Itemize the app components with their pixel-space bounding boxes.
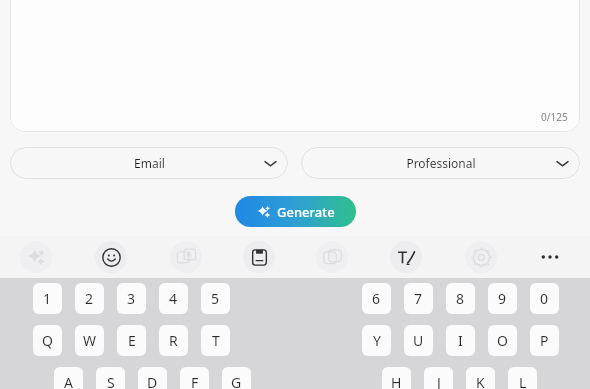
- button[interactable]: O: [488, 325, 517, 356]
- button[interactable]: L: [508, 367, 537, 389]
- button[interactable]: 1: [33, 283, 62, 314]
- staticText: Email: [134, 155, 165, 171]
- staticText: 7: [414, 289, 423, 308]
- staticText: J: [437, 373, 441, 389]
- button[interactable]: W: [75, 325, 104, 356]
- button[interactable]: 4: [159, 283, 188, 314]
- button[interactable]: J: [424, 367, 453, 389]
- staticText: 3: [127, 289, 136, 308]
- staticText: T: [212, 331, 220, 350]
- staticText: Y: [373, 331, 381, 350]
- staticText: 0: [540, 289, 549, 308]
- staticText: 1: [43, 289, 52, 308]
- button[interactable]: More options: [540, 247, 560, 267]
- button[interactable]: Clipboard: [243, 241, 275, 273]
- button[interactable]: 6: [362, 283, 391, 314]
- button[interactable]: I: [446, 325, 475, 356]
- button[interactable]: Generate: [235, 196, 356, 227]
- button[interactable]: 3: [117, 283, 146, 314]
- staticText: 8: [456, 289, 465, 308]
- staticText: Professional: [406, 155, 476, 171]
- staticText: U: [413, 331, 424, 350]
- button[interactable]: 0: [530, 283, 559, 314]
- button[interactable]: U: [404, 325, 433, 356]
- staticText: K: [476, 373, 485, 389]
- button[interactable]: Email: [10, 147, 288, 179]
- staticText: O: [497, 331, 508, 350]
- button[interactable]: 0/125: [10, 0, 580, 132]
- button[interactable]: H: [382, 367, 411, 389]
- button[interactable]: 2: [75, 283, 104, 314]
- button[interactable]: AI suggestions: [20, 241, 52, 273]
- button[interactable]: G: [222, 367, 251, 389]
- staticText: L: [519, 373, 527, 389]
- button[interactable]: Handwriting: [390, 241, 422, 273]
- button[interactable]: Emoji: [95, 241, 127, 273]
- staticText: D: [147, 373, 158, 389]
- button[interactable]: A: [54, 367, 83, 389]
- staticText: R: [169, 331, 178, 350]
- button[interactable]: Q: [33, 325, 62, 356]
- staticText: S: [107, 373, 115, 389]
- staticText: 9: [498, 289, 507, 308]
- button[interactable]: P: [530, 325, 559, 356]
- button[interactable]: Y: [362, 325, 391, 356]
- button[interactable]: Settings: [465, 241, 497, 273]
- button[interactable]: Professional: [301, 147, 580, 179]
- button[interactable]: 8: [446, 283, 475, 314]
- staticText: P: [540, 331, 549, 350]
- staticText: A: [64, 373, 73, 389]
- button[interactable]: T: [201, 325, 230, 356]
- button[interactable]: R: [159, 325, 188, 356]
- staticText: F: [191, 373, 199, 389]
- staticText: 4: [169, 289, 178, 308]
- staticText: 5: [211, 289, 220, 308]
- button[interactable]: 9: [488, 283, 517, 314]
- staticText: E: [128, 331, 136, 350]
- button[interactable]: D: [138, 367, 167, 389]
- staticText: Q: [42, 331, 53, 350]
- button[interactable]: S: [96, 367, 125, 389]
- button[interactable]: K: [466, 367, 495, 389]
- button[interactable]: E: [117, 325, 146, 356]
- button[interactable]: Translate: [170, 241, 202, 273]
- button[interactable]: F: [180, 367, 209, 389]
- staticText: G: [231, 373, 242, 389]
- staticText: W: [83, 331, 97, 350]
- staticText: 0/125: [541, 110, 568, 124]
- button[interactable]: Stickers: [316, 241, 348, 273]
- button[interactable]: 5: [201, 283, 230, 314]
- staticText: 2: [85, 289, 94, 308]
- staticText: Generate: [277, 203, 335, 221]
- staticText: 6: [372, 289, 381, 308]
- staticText: H: [391, 373, 402, 389]
- staticText: I: [458, 331, 463, 350]
- button[interactable]: 7: [404, 283, 433, 314]
